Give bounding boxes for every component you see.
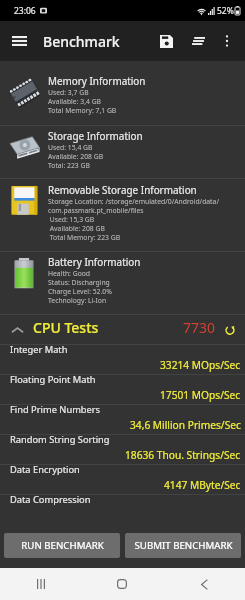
button[interactable]: Memory Information bbox=[0, 62, 245, 126]
staticText: Memory Information bbox=[48, 74, 146, 87]
staticText: 17501 MOps/Sec bbox=[160, 388, 241, 402]
button[interactable]: Navigation menu bbox=[6, 28, 32, 54]
button[interactable]: RUN BENCHMARK bbox=[4, 533, 120, 558]
button[interactable]: Save bbox=[153, 28, 179, 54]
button[interactable]: Storage Information bbox=[0, 126, 245, 179]
staticText: Available: 3,4 GB bbox=[48, 97, 102, 106]
staticText: CPU Tests bbox=[33, 318, 99, 337]
staticText: Data Compression bbox=[10, 493, 91, 506]
staticText: Used: 3,7 GB bbox=[48, 88, 89, 97]
button[interactable]: Data Encryption bbox=[0, 465, 245, 495]
staticText: Used: 15,3 GB bbox=[48, 215, 95, 224]
staticText: Technology: Li-Ion bbox=[48, 296, 107, 305]
staticText: Benchmark bbox=[43, 32, 120, 51]
button[interactable]: Recent apps bbox=[0, 568, 81, 600]
staticText: 7730 bbox=[183, 318, 216, 337]
button[interactable]: Integer Math bbox=[0, 345, 245, 375]
staticText: RUN BENCHMARK bbox=[21, 539, 104, 552]
staticText: 34,6 Million Primes/Sec bbox=[130, 418, 241, 432]
staticText: Find Prime Numbers bbox=[10, 403, 101, 416]
staticText: Removable Storage Information bbox=[48, 183, 197, 196]
button[interactable]: Find Prime Numbers bbox=[0, 405, 245, 435]
staticText: 23:06 bbox=[14, 5, 36, 17]
staticText: 18636 Thou. Strings/Sec bbox=[125, 448, 241, 462]
staticText: Data Encryption bbox=[10, 463, 80, 476]
button[interactable]: Data Compression bbox=[0, 495, 245, 525]
staticText: 4147 MByte/Sec bbox=[164, 478, 241, 492]
button[interactable]: More options bbox=[214, 28, 240, 54]
staticText: Available: 208 GB bbox=[48, 224, 105, 233]
staticText: com.passmark.pt_mobile/files bbox=[48, 206, 144, 215]
staticText: Health: Good bbox=[48, 269, 91, 278]
staticText: Storage Information bbox=[48, 129, 143, 142]
staticText: 33214 MOps/Sec bbox=[160, 358, 241, 372]
button[interactable]: Random String Sorting bbox=[0, 435, 245, 465]
staticText: Total Memory: 7,1 GB bbox=[48, 106, 117, 115]
staticText: Available: 208 GB bbox=[48, 152, 104, 161]
staticText: Total Memory: 223 GB bbox=[48, 233, 121, 242]
staticText: Charge Level: 52.0% bbox=[48, 287, 112, 296]
button[interactable]: Floating Point Math bbox=[0, 375, 245, 405]
staticText: SUBMIT BENCHMARK bbox=[134, 539, 233, 552]
staticText: Storage Location: /storage/emulated/0/An… bbox=[48, 197, 219, 206]
staticText: Total: 223 GB bbox=[48, 161, 90, 170]
button[interactable]: CPU Tests bbox=[0, 315, 245, 345]
button[interactable]: SUBMIT BENCHMARK bbox=[125, 533, 241, 558]
staticText: Status: Discharging bbox=[48, 278, 110, 287]
staticText: Integer Math bbox=[10, 343, 68, 356]
staticText: Floating Point Math bbox=[10, 373, 96, 386]
button[interactable]: Battery Information bbox=[0, 252, 245, 315]
button[interactable]: Sort bbox=[185, 28, 211, 54]
staticText: Random String Sorting bbox=[10, 433, 110, 446]
staticText: Battery Information bbox=[48, 255, 141, 268]
staticText: 52% bbox=[217, 5, 234, 17]
button[interactable]: Home bbox=[81, 568, 163, 600]
button[interactable]: Back bbox=[163, 568, 245, 600]
button[interactable]: Removable Storage Information bbox=[0, 179, 245, 252]
staticText: Used: 15,4 GB bbox=[48, 143, 93, 152]
